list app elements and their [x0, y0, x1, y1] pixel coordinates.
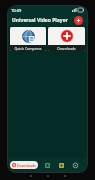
button[interactable]: Downloads — [48, 27, 85, 51]
button[interactable]: Library — [42, 160, 52, 170]
button[interactable]: Tools — [56, 160, 66, 170]
button[interactable]: Downloads — [10, 161, 38, 169]
button[interactable]: Settings — [70, 160, 80, 170]
staticText: Quick Compress — [14, 46, 42, 51]
button[interactable]: Quick Compress — [10, 27, 46, 51]
staticText: Downloads — [17, 163, 36, 168]
staticText: 10:09 — [11, 8, 22, 13]
staticText: Universal Video Player — [12, 17, 68, 24]
staticText: Downloads — [57, 46, 76, 51]
button[interactable]: Add — [74, 16, 83, 25]
